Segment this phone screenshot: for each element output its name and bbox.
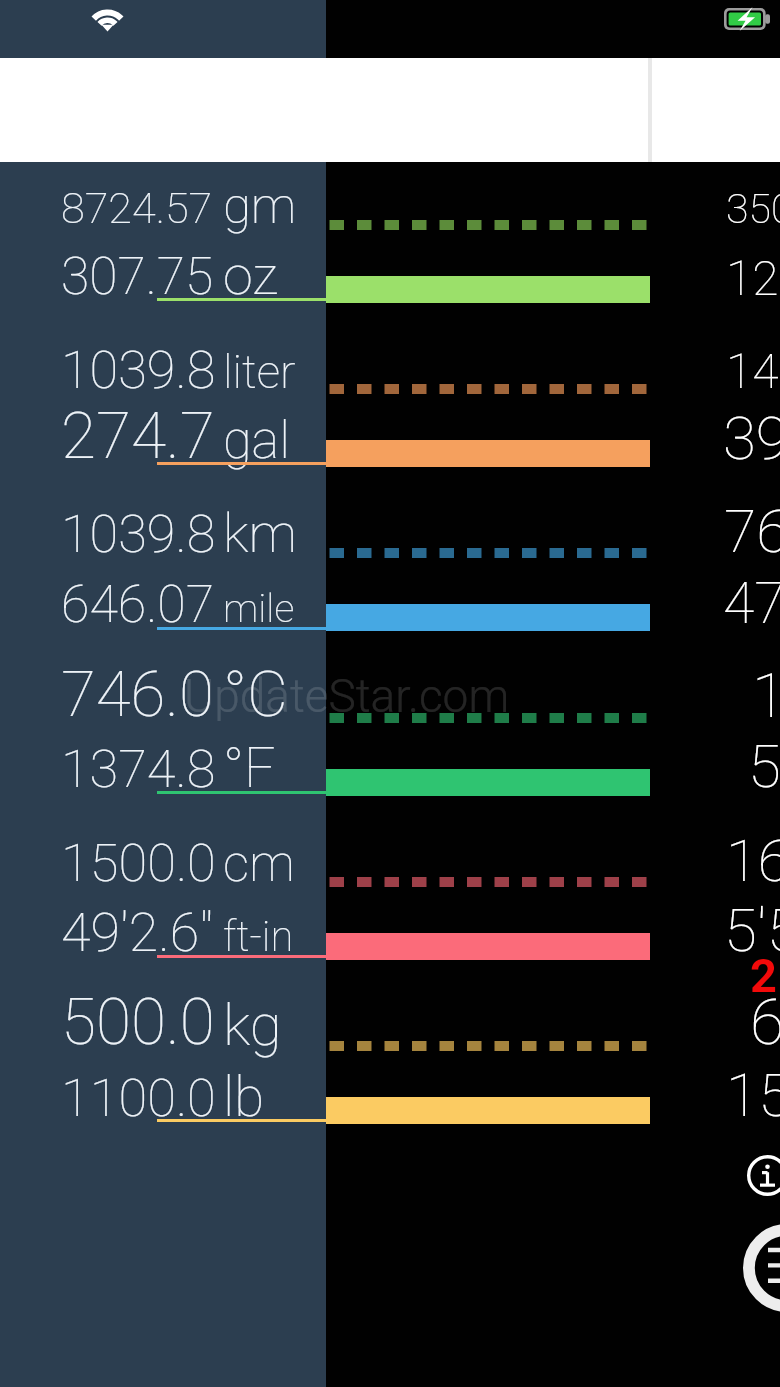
staticText: 1039.8 xyxy=(61,339,216,400)
staticText: 49'2.6" xyxy=(61,901,213,964)
staticText: 1500.0 xyxy=(61,832,216,893)
staticText: 1 xyxy=(752,659,780,732)
staticText: gm xyxy=(223,176,297,236)
other: Wi-Fi xyxy=(88,2,128,36)
staticText: 14 xyxy=(726,343,779,399)
button[interactable]: Information xyxy=(745,1153,780,1198)
staticText: km xyxy=(223,502,298,565)
staticText: 5'5 xyxy=(724,895,780,965)
staticText: °C xyxy=(223,658,288,732)
button[interactable] xyxy=(0,166,326,278)
staticText: 5 xyxy=(748,731,780,801)
staticText: 76 xyxy=(724,497,780,566)
staticText: UpdateStar.com xyxy=(184,669,510,723)
staticText: 2 xyxy=(750,948,777,1003)
staticText: 350 xyxy=(726,185,780,233)
staticText: mile xyxy=(223,586,295,632)
staticText: 1100.0 xyxy=(61,1067,216,1128)
staticText: 1039.8 xyxy=(61,503,216,564)
staticText: 274.7 xyxy=(61,399,215,474)
button[interactable]: Menu xyxy=(743,1224,780,1312)
staticText: ft-in xyxy=(223,912,294,961)
staticText: 8724.57 xyxy=(61,183,213,234)
staticText: 746.0 xyxy=(61,657,214,731)
button[interactable] xyxy=(0,822,326,934)
staticText: 500.0 xyxy=(61,985,215,1060)
staticText: liter xyxy=(223,345,296,399)
staticText: lb xyxy=(223,1065,265,1129)
staticText: °F xyxy=(223,736,276,800)
staticText: 307.75 xyxy=(61,246,214,306)
staticText: 39 xyxy=(723,403,780,473)
staticText: cm xyxy=(223,833,295,893)
staticText: 6 xyxy=(750,986,780,1060)
button[interactable] xyxy=(0,494,326,606)
staticText: 646.07 xyxy=(61,574,215,635)
button[interactable] xyxy=(0,987,326,1099)
staticText: 12 xyxy=(726,250,779,306)
staticText: kg xyxy=(223,991,282,1059)
staticText: gal xyxy=(223,410,290,471)
staticText: 47 xyxy=(723,570,780,637)
staticText: 1374.8 xyxy=(61,738,216,799)
staticText: oz xyxy=(223,244,279,307)
staticText: 16 xyxy=(726,827,780,895)
button[interactable] xyxy=(0,330,326,442)
staticText: 15 xyxy=(726,1061,780,1130)
button[interactable] xyxy=(0,658,326,770)
